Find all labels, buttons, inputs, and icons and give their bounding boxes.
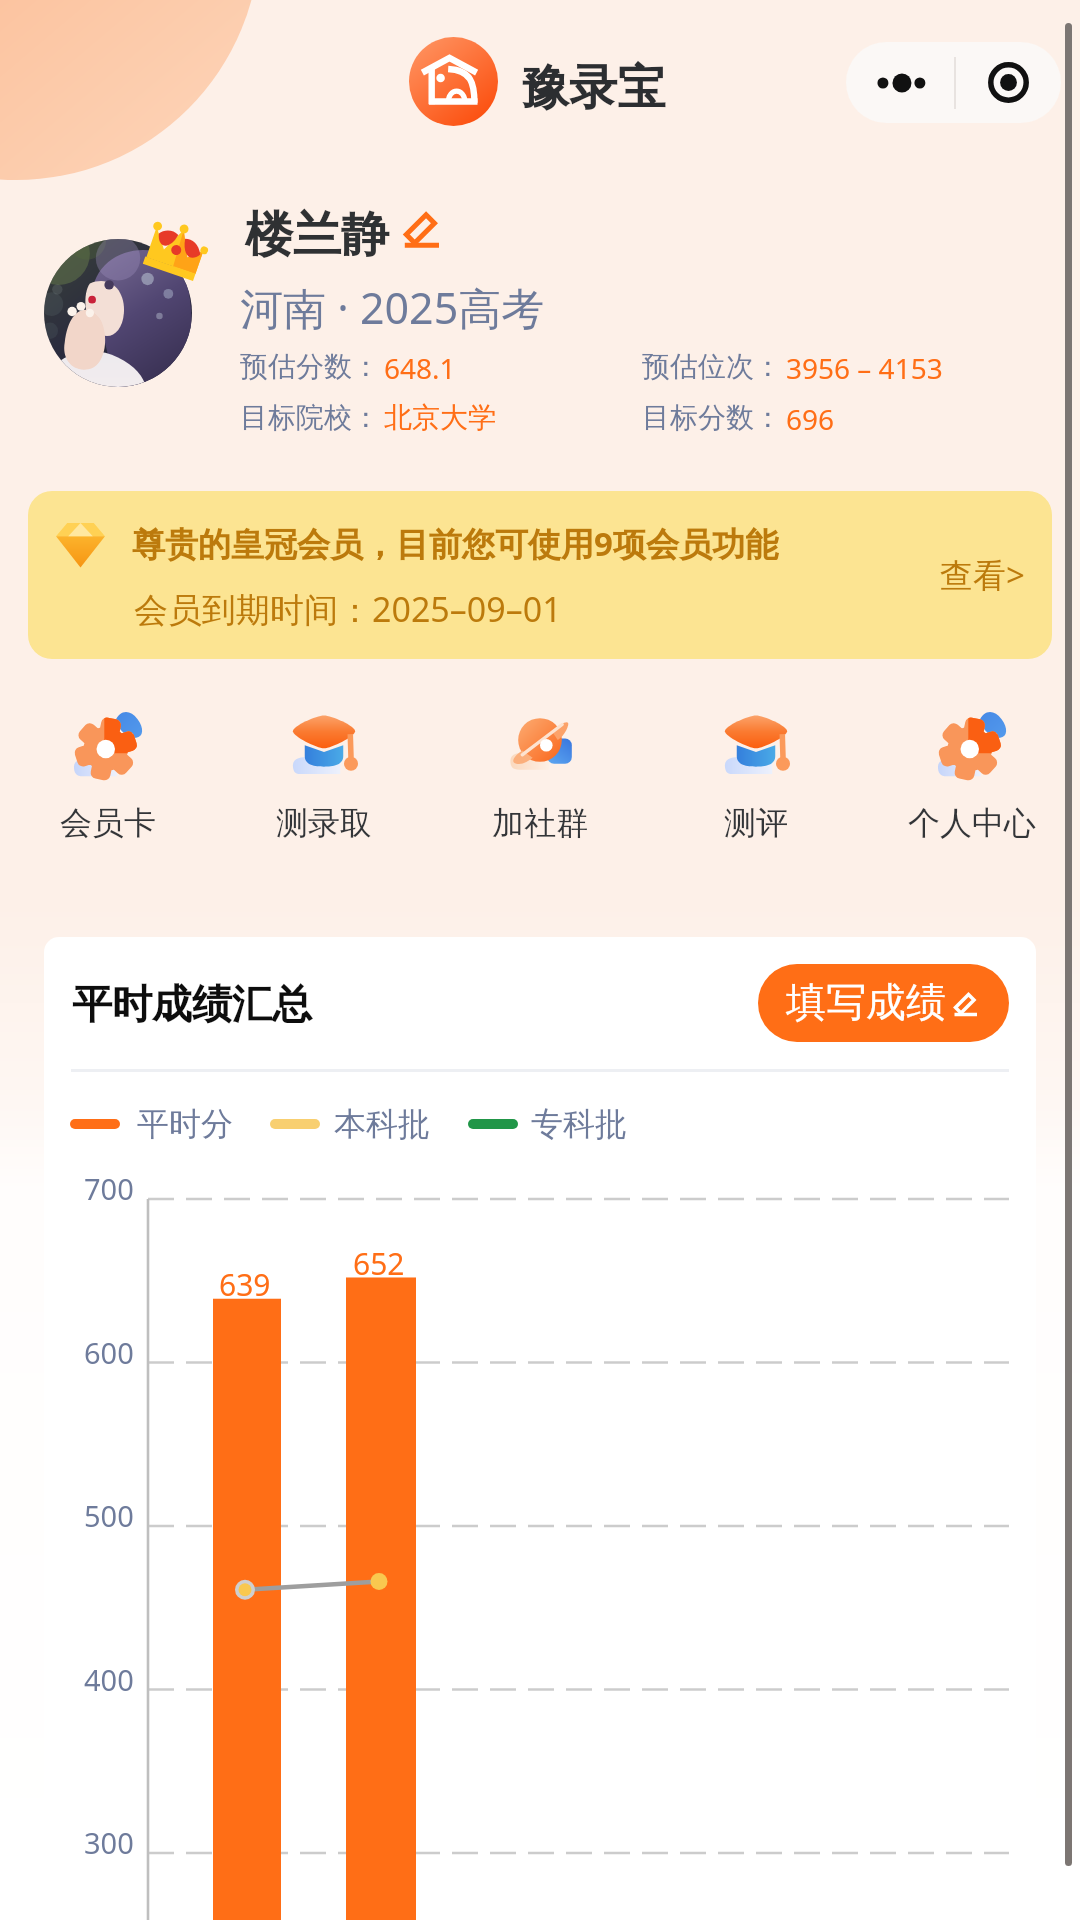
staticText: 平时分 xyxy=(137,1104,233,1144)
button[interactable]: 加社群 xyxy=(432,706,648,843)
button[interactable]: 专科批 xyxy=(468,1104,631,1150)
staticText: 400 xyxy=(84,1660,134,1699)
staticText: 测录取 xyxy=(276,803,372,843)
staticText: 楼兰静 xyxy=(245,205,389,265)
button[interactable]: 查看> xyxy=(940,552,1025,597)
staticText: 会员到期时间：2025–09–01 xyxy=(134,586,562,632)
other: Crown badge xyxy=(146,219,205,278)
staticText: 696 xyxy=(786,400,835,438)
staticText: 豫录宝 xyxy=(521,58,665,118)
staticText: 300 xyxy=(84,1823,134,1862)
staticText: 尊贵的皇冠会员，目前您可使用9项会员功能 xyxy=(132,521,778,566)
staticText: 500 xyxy=(84,1496,134,1535)
staticText: 河南 · 2025高考 xyxy=(240,278,545,337)
staticText: 测评 xyxy=(724,803,788,843)
button[interactable]: User avatar xyxy=(44,239,192,387)
staticText: 平时成绩汇总 xyxy=(72,979,312,1029)
staticText: 个人中心 xyxy=(908,803,1036,843)
staticText: 预估分数： xyxy=(240,349,380,384)
button[interactable]: 本科批 xyxy=(270,1104,434,1150)
staticText: 648.1 xyxy=(384,349,456,387)
button[interactable]: Edit profile name xyxy=(401,211,439,249)
button[interactable]: Close mini program xyxy=(956,42,1061,123)
staticText: 639 xyxy=(219,1264,271,1305)
button[interactable]: 填写成绩 xyxy=(758,964,1009,1042)
staticText: 700 xyxy=(84,1169,134,1208)
staticText: 会员卡 xyxy=(60,803,156,843)
button[interactable]: 尊贵的皇冠会员，目前您可使用9项会员功能 xyxy=(28,491,1052,659)
button[interactable]: 平时分 xyxy=(70,1104,237,1150)
button[interactable]: 测录取 xyxy=(216,706,432,843)
staticText: 600 xyxy=(84,1333,134,1372)
staticText: 652 xyxy=(353,1243,405,1284)
staticText: 填写成绩 xyxy=(786,977,946,1027)
staticText: 目标院校： xyxy=(240,400,380,435)
staticText: 预估位次： xyxy=(642,349,782,384)
button[interactable]: More options xyxy=(846,42,954,123)
button[interactable]: 会员卡 xyxy=(0,706,216,843)
button[interactable]: App logo xyxy=(409,37,498,126)
staticText: 本科批 xyxy=(334,1104,430,1144)
staticText: 3956 – 4153 xyxy=(786,349,943,387)
button[interactable]: 个人中心 xyxy=(864,706,1080,843)
staticText: 目标分数： xyxy=(642,400,782,435)
staticText: 北京大学 xyxy=(384,400,496,435)
staticText: 加社群 xyxy=(492,803,588,843)
staticText: 专科批 xyxy=(531,1104,627,1144)
button[interactable]: 测评 xyxy=(648,706,864,843)
